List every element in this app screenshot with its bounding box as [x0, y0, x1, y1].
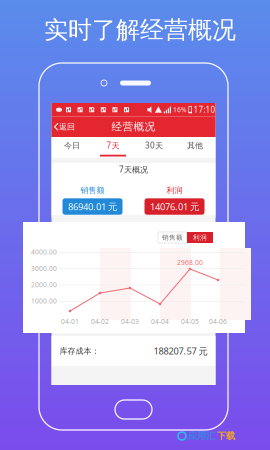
- staticText: 17:10: [193, 104, 215, 115]
- staticText: 1000.00: [31, 297, 57, 305]
- staticText: 下载: [217, 430, 235, 442]
- staticText: 4000.00: [31, 248, 57, 256]
- staticText: 其他: [187, 141, 203, 150]
- staticText: 7天概况: [119, 164, 148, 175]
- staticText: 30天: [145, 140, 163, 151]
- staticText: 利润: [166, 185, 182, 195]
- staticText: 应用汇: [188, 430, 215, 442]
- button[interactable]: 其他: [174, 137, 215, 158]
- staticText: 04-01: [61, 317, 79, 326]
- staticText: 3000.00: [31, 264, 57, 273]
- button[interactable]: 今日: [51, 137, 92, 158]
- button[interactable]: 30天: [133, 137, 174, 158]
- staticText: 2968.00: [177, 258, 203, 267]
- staticText: 04-04: [151, 317, 169, 326]
- staticText: 经营概况: [111, 120, 155, 133]
- staticText: 利润: [193, 233, 207, 242]
- staticText: 销售额: [80, 185, 104, 195]
- button[interactable]: 销售额: [158, 232, 187, 243]
- staticText: 库存成本：: [59, 346, 99, 356]
- button[interactable]: 7天: [92, 137, 133, 158]
- staticText: 188207.57 元: [153, 345, 207, 357]
- staticText: 实时了解经营概况: [44, 15, 236, 45]
- staticText: 86940.01 元: [68, 200, 117, 213]
- staticText: 返回: [59, 122, 75, 132]
- staticText: 今日: [64, 141, 80, 150]
- staticText: 7天: [106, 140, 119, 151]
- staticText: 04-06: [209, 317, 227, 326]
- staticText: 14076.01 元: [150, 200, 199, 213]
- staticText: 04-02: [91, 317, 109, 326]
- button[interactable]: 利润: [187, 232, 213, 243]
- staticText: 2000.00: [31, 280, 57, 289]
- staticText: 04-03: [121, 317, 139, 326]
- staticText: 销售额: [162, 233, 183, 242]
- staticText: 04-05: [181, 317, 199, 326]
- button[interactable]: 返回: [51, 117, 78, 136]
- staticText: 16%: [173, 105, 187, 114]
